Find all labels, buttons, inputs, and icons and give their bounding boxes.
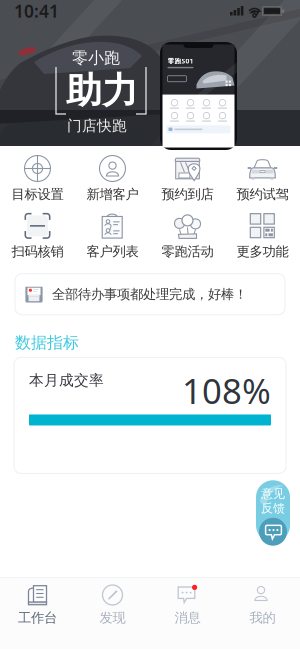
- staticText: 客户列表: [86, 243, 138, 260]
- staticText: 108%: [182, 367, 271, 413]
- button[interactable]: 工作台: [0, 584, 75, 626]
- button[interactable]: 零跑活动: [150, 207, 225, 265]
- staticText: 目标设置: [11, 186, 63, 202]
- staticText: 零跑S01: [167, 56, 193, 65]
- staticText: 助力: [66, 69, 138, 113]
- staticText: 预约到店: [161, 186, 213, 202]
- staticText: 我的: [249, 609, 275, 626]
- button[interactable]: 扫码核销: [0, 207, 75, 265]
- staticText: 更多功能: [236, 243, 288, 260]
- staticText: 本月成交率: [29, 371, 104, 389]
- staticText: 零小跑: [72, 48, 120, 68]
- staticText: 门店快跑: [67, 117, 127, 135]
- staticText: 意见: [261, 486, 285, 501]
- button[interactable]: 全部待办事项都处理完成，好棒！: [15, 274, 285, 315]
- button[interactable]: 我的: [225, 584, 300, 626]
- button[interactable]: 客户列表: [75, 207, 150, 265]
- staticText: 全部待办事项都处理完成，好棒！: [52, 286, 247, 302]
- button[interactable]: 更多功能: [225, 207, 300, 265]
- staticText: 工作台: [18, 609, 57, 626]
- button[interactable]: 新增客户: [75, 150, 150, 207]
- staticText: 预约试驾: [236, 186, 288, 202]
- staticText: 数据指标: [15, 333, 79, 352]
- staticText: 消息: [174, 609, 200, 626]
- staticText: 反馈: [261, 501, 285, 516]
- button[interactable]: 意见反馈: [256, 482, 290, 544]
- staticText: 扫码核销: [11, 243, 63, 260]
- staticText: 新增客户: [86, 186, 138, 202]
- button[interactable]: 目标设置: [0, 150, 75, 207]
- staticText: 10:41: [14, 0, 59, 22]
- button[interactable]: 消息: [150, 584, 225, 626]
- staticText: 零跑活动: [161, 243, 213, 260]
- staticText: 发现: [99, 609, 125, 626]
- button[interactable]: 预约到店: [150, 150, 225, 207]
- button[interactable]: 预约试驾: [225, 150, 300, 207]
- button[interactable]: 发现: [75, 584, 150, 626]
